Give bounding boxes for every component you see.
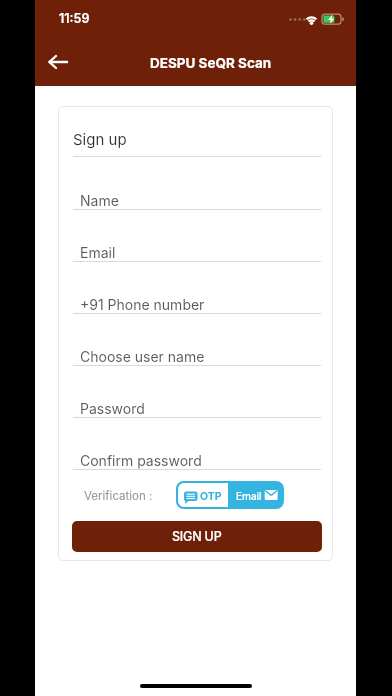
staticText: Confirm password <box>80 452 202 469</box>
staticText: Name <box>80 192 119 209</box>
staticText: DESPU SeQR Scan <box>150 55 272 71</box>
staticText: Password <box>80 400 145 417</box>
staticText: Sign up <box>73 130 127 148</box>
staticText: 11:59 <box>59 11 90 26</box>
staticText: Email <box>236 490 262 502</box>
staticText: +91 Phone number <box>80 296 205 313</box>
staticText: Verification : <box>84 489 153 503</box>
staticText: OTP <box>200 490 222 503</box>
staticText: Email <box>80 244 116 261</box>
staticText: SIGN UP <box>172 529 222 544</box>
staticText: Choose user name <box>80 348 205 365</box>
